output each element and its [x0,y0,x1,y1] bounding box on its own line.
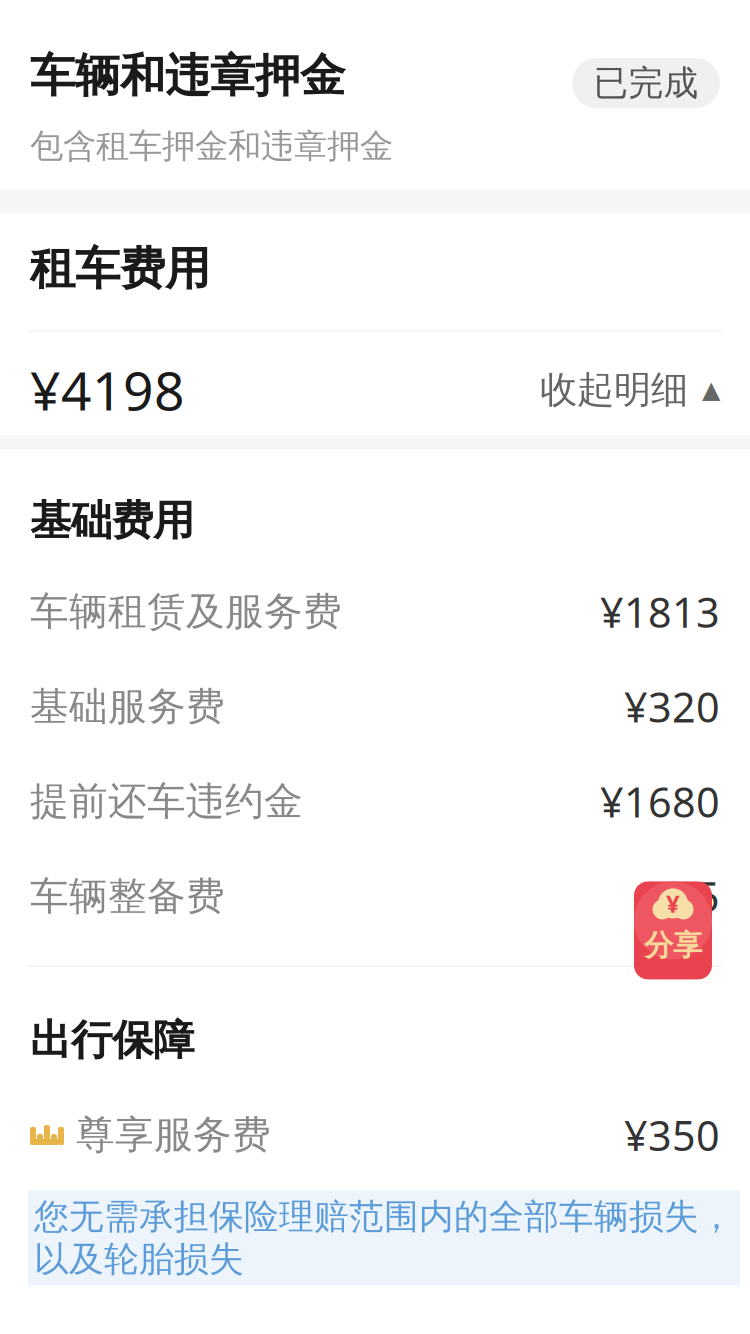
staticText: 基础服务费 [30,683,225,730]
staticText: 尊享服务费 [76,1111,271,1159]
staticText: ¥320 [624,679,720,734]
staticText: 包含租车押金和违章押金 [30,126,393,167]
button[interactable]: 已完成 [572,58,720,108]
staticText: 车辆整备费 [30,873,225,920]
staticText: 租车费用 [30,241,210,297]
staticText: 您无需承担保险理赔范围内的全部车辆损失，以及轮胎损失 [34,1195,734,1281]
staticText: 收起明细 [540,367,688,413]
staticText: 分享 [644,927,702,963]
staticText: 提前还车违约金 [30,778,303,825]
staticText: ▲ [694,376,720,403]
staticText: 基础费用 [30,495,194,546]
staticText: ¥350 [624,1107,720,1162]
staticText: ¥ [666,887,680,919]
staticText: 车辆和违章押金 [30,48,345,104]
staticText: 出行保障 [30,1015,194,1066]
staticText: 已完成 [593,62,698,104]
staticText: ¥35 [648,869,720,924]
staticText: ¥1680 [600,774,720,829]
staticText: ¥1813 [600,584,720,639]
staticText: 车辆租赁及服务费 [30,588,342,635]
staticText: ¥4198 [30,354,185,425]
button[interactable]: ¥4198 [0,332,750,448]
button[interactable]: 分享红包 [634,881,712,979]
